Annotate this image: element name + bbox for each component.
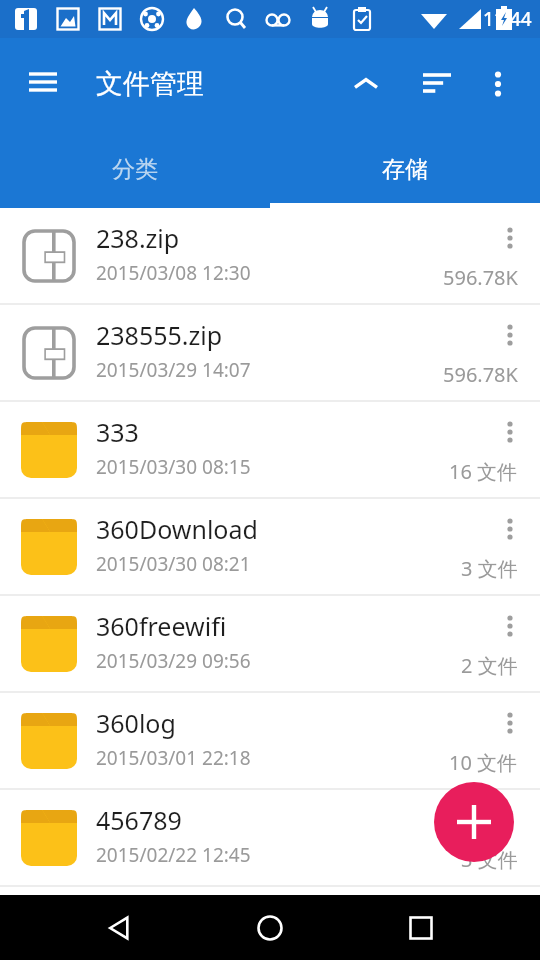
button[interactable]: Menu	[14, 55, 72, 113]
staticText: 2015/03/01 22:18	[96, 745, 251, 771]
button[interactable]: 333	[0, 402, 540, 497]
staticText: 333	[96, 415, 139, 449]
button[interactable]: Item options	[486, 408, 534, 456]
button[interactable]: Item options	[486, 699, 534, 747]
button[interactable]: Item options	[486, 796, 534, 844]
staticText: 分类	[112, 155, 158, 184]
staticText: 360Download	[96, 512, 258, 546]
button[interactable]: Item options	[486, 505, 534, 553]
button[interactable]: 456789	[0, 790, 540, 885]
staticText: 2015/03/30 08:21	[96, 551, 251, 577]
staticText: 2 文件	[461, 652, 518, 679]
button[interactable]: 238.zip	[0, 208, 540, 303]
button[interactable]: Back	[87, 896, 151, 960]
staticText: 596.78K	[443, 361, 518, 388]
staticText: 360log	[96, 706, 176, 740]
button[interactable]: Recents	[389, 896, 453, 960]
button[interactable]: Add	[434, 782, 514, 862]
button[interactable]: 238555.zip	[0, 305, 540, 400]
staticText: 2015/03/30 08:15	[96, 454, 251, 480]
button[interactable]: Collapse	[338, 56, 394, 112]
staticText: 238.zip	[96, 221, 180, 255]
staticText: 2015/02/22 12:45	[96, 842, 251, 868]
staticText: 10 文件	[449, 749, 518, 776]
button[interactable]: Item options	[486, 602, 534, 650]
button[interactable]: Item options	[486, 311, 534, 359]
staticText: 文件管理	[96, 67, 204, 101]
button[interactable]: More options	[470, 56, 526, 112]
staticText: 596.78K	[443, 264, 518, 291]
staticText: 360freewifi	[96, 609, 227, 643]
staticText: 11:44	[483, 6, 532, 32]
staticText: 3 文件	[461, 846, 518, 873]
staticText: 456789	[96, 803, 182, 837]
staticText: 存储	[382, 155, 428, 184]
staticText: 2015/03/29 14:07	[96, 357, 251, 383]
button[interactable]: 360Download	[0, 499, 540, 594]
button[interactable]: 存储	[270, 130, 540, 208]
staticText: 2015/03/29 09:56	[96, 648, 251, 674]
button[interactable]: 360freewifi	[0, 596, 540, 691]
staticText: 238555.zip	[96, 318, 223, 352]
button[interactable]: 360log	[0, 693, 540, 788]
staticText: 2015/03/08 12:30	[96, 260, 251, 286]
staticText: 16 文件	[449, 458, 518, 485]
button[interactable]: Sort	[409, 56, 465, 112]
staticText: 3 文件	[461, 555, 518, 582]
button[interactable]: Home	[238, 896, 302, 960]
button[interactable]: Item options	[486, 214, 534, 262]
button[interactable]: 分类	[0, 130, 270, 208]
